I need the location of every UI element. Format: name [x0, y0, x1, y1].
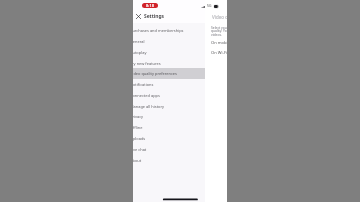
- staticText: Try new features: [133, 61, 161, 66]
- staticText: Settings: [144, 13, 165, 20]
- button[interactable]: Privacy: [133, 111, 205, 122]
- staticText: Purchases and memberships: [133, 28, 184, 33]
- button[interactable]: Connected apps: [133, 90, 205, 101]
- staticText: Offline: [133, 125, 143, 130]
- staticText: Select your preferred video quality. You…: [211, 25, 227, 37]
- staticText: About: [133, 158, 142, 163]
- button[interactable]: Try new features: [133, 58, 205, 69]
- button[interactable]: Offline: [133, 122, 205, 133]
- staticText: Manage all history: [133, 104, 165, 109]
- button[interactable]: Purchases and memberships: [133, 25, 205, 36]
- button[interactable]: General: [133, 36, 205, 47]
- staticText: General: [133, 39, 145, 44]
- staticText: Connected apps: [133, 93, 160, 98]
- button[interactable]: Manage all history: [133, 101, 205, 112]
- staticText: Notifications: [133, 82, 154, 87]
- button[interactable]: Video quality preferences: [133, 68, 205, 79]
- staticText: Uploads: [133, 136, 146, 141]
- staticText: 8:18: [146, 3, 154, 8]
- staticText: Live chat: [133, 147, 147, 152]
- staticText: Autoplay: [133, 50, 147, 55]
- button[interactable]: On Wi-Fi: [211, 47, 227, 58]
- button[interactable]: Close: [133, 11, 143, 22]
- button[interactable]: Notifications: [133, 79, 205, 90]
- button[interactable]: Autoplay: [133, 47, 205, 58]
- staticText: Video quality preferences: [133, 71, 177, 76]
- staticText: Privacy: [133, 114, 144, 119]
- button[interactable]: On mobile networks: [211, 37, 227, 48]
- button[interactable]: Live chat: [133, 144, 205, 155]
- staticText: On mobile networks: [211, 40, 227, 46]
- button[interactable]: About: [133, 155, 205, 166]
- staticText: Video quality preferences: [212, 14, 227, 20]
- staticText: On Wi-Fi: [211, 50, 227, 56]
- button[interactable]: Uploads: [133, 133, 205, 144]
- staticText: 5G: [207, 3, 212, 8]
